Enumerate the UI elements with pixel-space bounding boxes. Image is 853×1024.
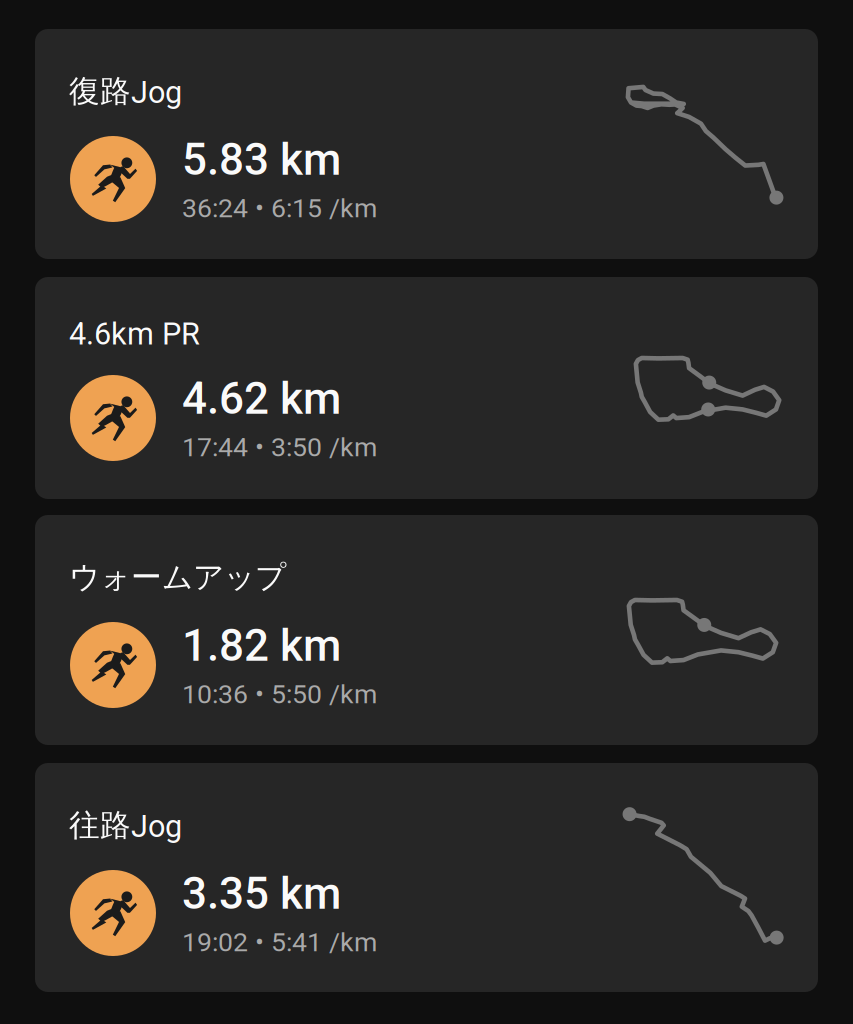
staticText: 19:02 • 5:41 /km (182, 927, 377, 958)
staticText: 往路Jog (69, 806, 182, 845)
staticText: ウォームアップ (69, 558, 286, 597)
staticText: 復路Jog (69, 72, 182, 111)
button[interactable]: 4.6km PR (35, 277, 818, 499)
staticText: 4.62 km (182, 373, 341, 425)
staticText: 3.35 km (182, 868, 341, 920)
staticText: 4.6km PR (69, 316, 200, 352)
button[interactable]: 往路Jog (35, 763, 818, 992)
staticText: 17:44 • 3:50 /km (182, 432, 377, 463)
staticText: 5.83 km (182, 134, 341, 186)
button[interactable]: 復路Jog (35, 29, 818, 259)
staticText: 36:24 • 6:15 /km (182, 193, 377, 224)
button[interactable]: ウォームアップ (35, 515, 818, 745)
staticText: 10:36 • 5:50 /km (182, 679, 377, 710)
staticText: 1.82 km (182, 620, 341, 672)
